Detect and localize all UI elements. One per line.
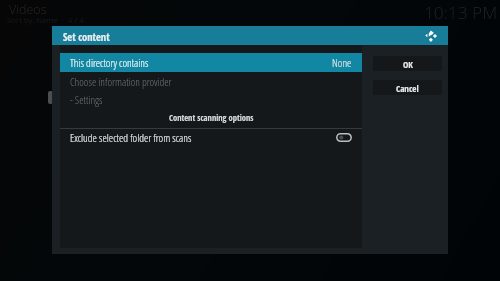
button[interactable]: Cancel [373, 80, 442, 95]
staticText: This directory contains [70, 55, 149, 70]
other: Kodi [425, 30, 437, 42]
staticText: Exclude selected folder from scans [70, 130, 192, 145]
staticText: None [332, 55, 352, 70]
button[interactable]: Exclude selected folder from scans [336, 133, 352, 142]
button[interactable]: Choose information provider [60, 72, 362, 90]
button[interactable]: OK [373, 56, 442, 71]
button[interactable]: This directory contains [60, 53, 362, 72]
staticText: - Settings [70, 92, 103, 107]
staticText: Cancel [396, 82, 419, 94]
staticText: Set content [63, 30, 110, 44]
staticText: Choose information provider [70, 74, 172, 89]
staticText: OK [403, 58, 413, 70]
staticText: 10:13 PM [424, 1, 498, 25]
staticText: Content scanning options [169, 112, 254, 124]
staticText: Sort by: Name · 4 / 4 [7, 14, 84, 25]
button[interactable]: - Settings [60, 90, 362, 108]
staticText: Videos [9, 1, 47, 18]
button[interactable]: Exclude selected folder from scans [60, 129, 362, 146]
